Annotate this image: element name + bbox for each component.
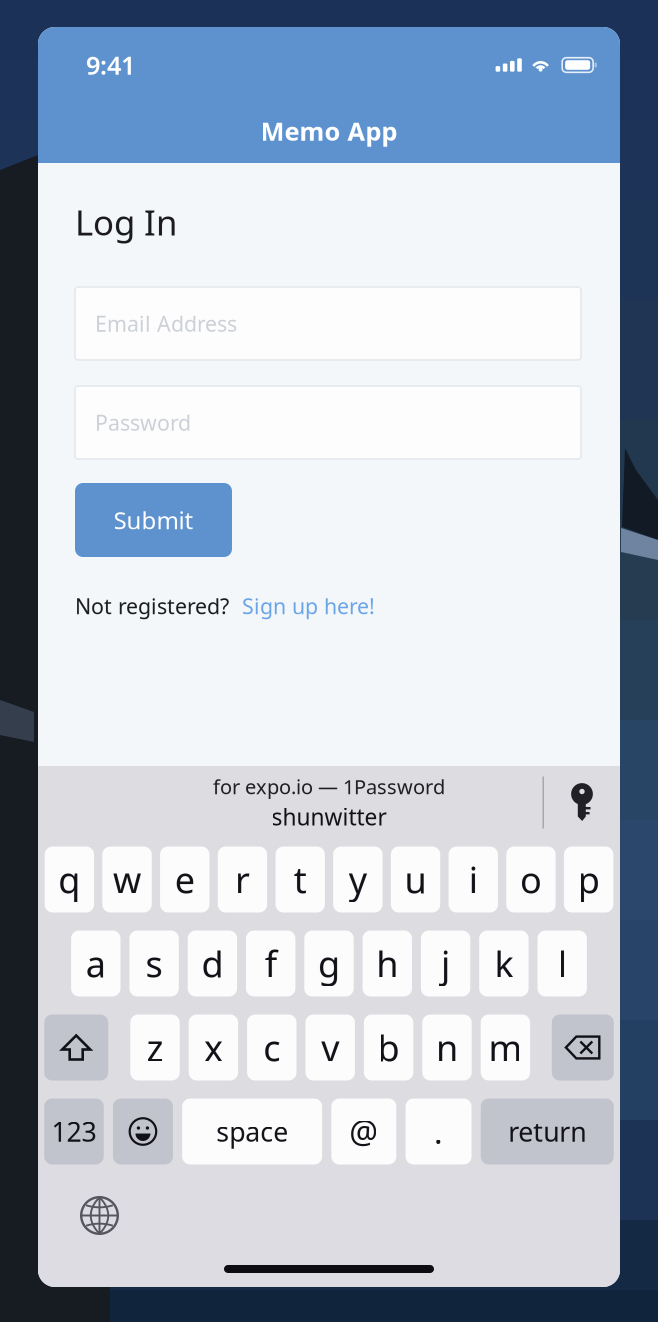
button[interactable]: p	[564, 846, 613, 912]
staticText: shunwitter	[271, 802, 386, 832]
staticText: Email Address	[95, 309, 237, 338]
button[interactable]: i	[449, 846, 498, 912]
staticText: n	[436, 1024, 458, 1071]
staticText: c	[263, 1024, 280, 1071]
button[interactable]: r	[218, 846, 267, 912]
staticText: r	[235, 856, 250, 903]
button[interactable]: y	[333, 846, 383, 912]
button[interactable]: t	[275, 846, 325, 912]
staticText: Password	[95, 408, 191, 437]
staticText: Sign up here!	[242, 592, 375, 620]
staticText: b	[378, 1024, 400, 1071]
staticText: h	[376, 940, 398, 987]
staticText: t	[294, 856, 307, 903]
button[interactable]: m	[481, 1014, 530, 1080]
button[interactable]: 123	[44, 1098, 104, 1164]
button[interactable]: n	[422, 1014, 472, 1080]
button[interactable]: Change keyboard	[80, 1196, 119, 1235]
button[interactable]: z	[130, 1014, 180, 1080]
staticText: for expo.io — 1Password	[213, 773, 445, 800]
button[interactable]: Passwords	[544, 762, 620, 843]
staticText: v	[321, 1024, 339, 1071]
button[interactable]: @	[331, 1098, 396, 1164]
button[interactable]: Delete	[552, 1014, 614, 1080]
staticText: k	[494, 940, 513, 987]
button[interactable]: Email Address	[75, 287, 581, 360]
button[interactable]: space	[182, 1098, 322, 1164]
staticText: Log In	[75, 199, 177, 245]
staticText: m	[488, 1024, 522, 1071]
button[interactable]: Shift	[44, 1014, 108, 1080]
button[interactable]: f	[246, 930, 295, 996]
button[interactable]: x	[189, 1014, 238, 1080]
staticText: 123	[51, 1114, 96, 1149]
button[interactable]: c	[247, 1014, 296, 1080]
staticText: o	[520, 856, 542, 903]
button[interactable]: w	[102, 846, 152, 912]
button[interactable]: .	[406, 1098, 472, 1164]
button[interactable]: s	[129, 930, 179, 996]
staticText: w	[113, 856, 141, 903]
button[interactable]: l	[537, 930, 587, 996]
button[interactable]: j	[421, 930, 470, 996]
button[interactable]: k	[479, 930, 529, 996]
button[interactable]: Submit	[75, 483, 232, 557]
button[interactable]: b	[364, 1014, 413, 1080]
staticText: return	[508, 1114, 586, 1149]
staticText: e	[175, 856, 195, 903]
staticText: p	[578, 856, 600, 903]
staticText: l	[558, 940, 567, 987]
button[interactable]: Sign up here!	[242, 592, 375, 620]
staticText: Not registered?	[75, 592, 229, 620]
staticText: a	[86, 940, 106, 987]
staticText: f	[265, 940, 277, 987]
staticText: u	[405, 856, 427, 903]
staticText: j	[441, 940, 450, 987]
button[interactable]: e	[160, 846, 209, 912]
staticText: Memo App	[260, 114, 397, 148]
button[interactable]: q	[45, 846, 94, 912]
staticText: .	[434, 1110, 443, 1153]
button[interactable]: a	[71, 930, 120, 996]
staticText: 9:41	[86, 48, 135, 82]
staticText: s	[146, 940, 163, 987]
staticText: Submit	[113, 504, 193, 536]
button[interactable]: o	[506, 846, 556, 912]
staticText: q	[58, 856, 80, 903]
button[interactable]: d	[188, 930, 237, 996]
button[interactable]: u	[391, 846, 440, 912]
staticText: space	[216, 1114, 288, 1149]
button[interactable]: Password	[75, 386, 581, 459]
staticText: x	[204, 1024, 223, 1071]
staticText: g	[318, 940, 340, 987]
staticText: i	[469, 856, 478, 903]
staticText: z	[146, 1024, 163, 1071]
button[interactable]: Emoji	[113, 1098, 173, 1164]
button[interactable]: return	[481, 1098, 614, 1164]
staticText: y	[349, 856, 367, 903]
button[interactable]: g	[304, 930, 354, 996]
button[interactable]: h	[363, 930, 412, 996]
staticText: d	[201, 940, 223, 987]
staticText: @	[349, 1110, 378, 1153]
button[interactable]: v	[305, 1014, 355, 1080]
